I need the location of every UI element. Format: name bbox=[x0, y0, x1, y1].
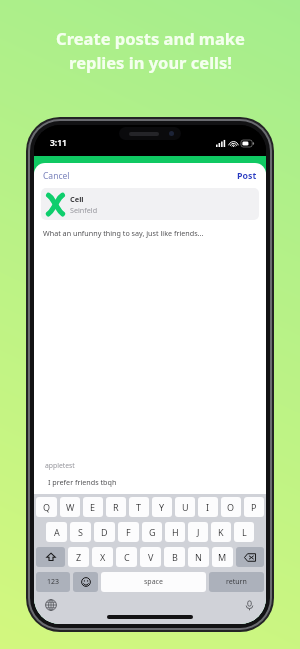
staticText: 3:11 bbox=[50, 137, 67, 149]
staticText: Post bbox=[237, 170, 257, 182]
button[interactable]: Post bbox=[231, 166, 266, 186]
button[interactable]: Z bbox=[68, 547, 89, 567]
button[interactable]: Dictation bbox=[242, 598, 256, 612]
staticText: M bbox=[218, 551, 227, 563]
button[interactable]: R bbox=[106, 497, 126, 517]
staticText: Create posts and make bbox=[56, 27, 245, 49]
staticText: N bbox=[195, 551, 202, 563]
button[interactable]: W bbox=[60, 497, 80, 517]
button[interactable]: Y bbox=[152, 497, 172, 517]
staticText: return bbox=[226, 577, 247, 587]
staticText: E bbox=[90, 501, 96, 513]
button[interactable]: H bbox=[165, 522, 185, 542]
button[interactable]: B bbox=[164, 547, 185, 567]
staticText: T bbox=[136, 501, 142, 513]
button[interactable]: T bbox=[129, 497, 149, 517]
staticText: Cancel bbox=[43, 170, 70, 182]
button[interactable]: S bbox=[70, 522, 91, 542]
button[interactable]: C bbox=[116, 547, 137, 567]
staticText: A bbox=[54, 526, 60, 538]
staticText: C bbox=[124, 551, 130, 563]
button[interactable]: P bbox=[244, 497, 264, 517]
button[interactable]: A bbox=[46, 522, 67, 542]
staticText: W bbox=[66, 501, 75, 513]
staticText: I prefer friends tbqh bbox=[48, 477, 117, 487]
staticText: V bbox=[148, 551, 154, 563]
staticText: O bbox=[227, 501, 235, 513]
button[interactable]: Backspace bbox=[236, 547, 264, 567]
button[interactable]: L bbox=[234, 522, 254, 542]
staticText: G bbox=[149, 526, 156, 538]
staticText: R bbox=[113, 501, 119, 513]
staticText: H bbox=[172, 526, 179, 538]
staticText: Y bbox=[159, 501, 165, 513]
staticText: Q bbox=[43, 501, 51, 513]
staticText: Z bbox=[76, 551, 82, 563]
button[interactable]: X bbox=[92, 547, 113, 567]
button[interactable]: V bbox=[140, 547, 161, 567]
staticText: What an unfunny thing to say, just like … bbox=[43, 228, 204, 238]
staticText: I bbox=[206, 501, 210, 513]
button[interactable]: G bbox=[142, 522, 162, 542]
button[interactable]: F bbox=[118, 522, 139, 542]
button[interactable]: return bbox=[209, 572, 264, 592]
button[interactable]: M bbox=[212, 547, 233, 567]
staticText: X bbox=[100, 551, 106, 563]
staticText: S bbox=[78, 526, 83, 538]
staticText: P bbox=[251, 501, 257, 513]
button[interactable]: Cancel bbox=[34, 166, 76, 186]
button[interactable]: Emoji bbox=[73, 572, 98, 592]
staticText: space bbox=[144, 577, 163, 587]
button[interactable]: Cell bbox=[41, 188, 259, 220]
button[interactable]: N bbox=[188, 547, 209, 567]
staticText: K bbox=[218, 526, 224, 538]
button[interactable]: E bbox=[83, 497, 103, 517]
button[interactable]: U bbox=[175, 497, 195, 517]
button[interactable]: Q bbox=[36, 497, 57, 517]
staticText: replies in your cells! bbox=[69, 51, 232, 73]
staticText: B bbox=[172, 551, 178, 563]
staticText: F bbox=[126, 526, 131, 538]
button[interactable]: D bbox=[94, 522, 115, 542]
staticText: 123 bbox=[47, 577, 60, 587]
button[interactable]: I bbox=[198, 497, 218, 517]
staticText: D bbox=[101, 526, 108, 538]
button[interactable]: O bbox=[221, 497, 241, 517]
staticText: appletest bbox=[45, 461, 75, 470]
button[interactable]: J bbox=[188, 522, 208, 542]
staticText: Cell bbox=[70, 194, 84, 204]
button[interactable]: Switch keyboard bbox=[44, 598, 58, 612]
staticText: L bbox=[242, 526, 247, 538]
button[interactable]: K bbox=[211, 522, 231, 542]
staticText: U bbox=[182, 501, 189, 513]
button[interactable]: Shift bbox=[36, 547, 65, 567]
staticText: J bbox=[197, 526, 200, 538]
staticText: Seinfeld bbox=[70, 205, 98, 215]
button[interactable]: space bbox=[101, 572, 206, 592]
button[interactable]: 123 bbox=[36, 572, 70, 592]
